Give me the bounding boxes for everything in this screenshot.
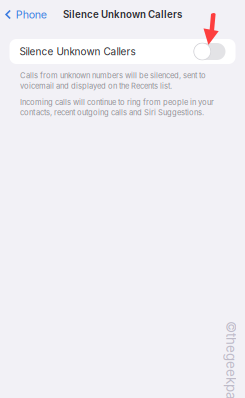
staticText: Silence Unknown Callers [19, 45, 135, 58]
staticText: Incoming calls will continue to ring fro… [20, 98, 214, 117]
button[interactable]: Silence Unknown Callers [9, 39, 235, 64]
staticText: Calls from unknown numbers will be silen… [20, 71, 206, 91]
staticText: Phone [16, 8, 47, 21]
staticText: Silence Unknown Callers [63, 9, 182, 20]
staticText: ©thegeekpage [166, 378, 245, 394]
button[interactable]: Phone [0, 3, 51, 26]
